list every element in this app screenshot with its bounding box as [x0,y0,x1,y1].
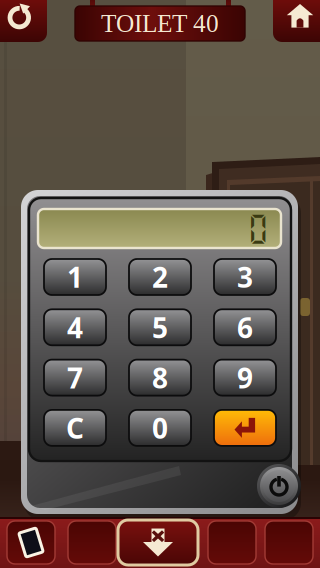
button[interactable]: Inventory slot [208,521,256,564]
button[interactable]: 6 [214,309,276,345]
staticText: 7 [67,359,83,396]
staticText: 8 [152,359,168,396]
staticText: 5 [152,309,168,346]
button[interactable]: 8 [129,360,191,396]
button[interactable]: Close keypad [118,520,198,565]
staticText: 9 [237,359,253,396]
button[interactable]: Home [273,0,320,42]
button[interactable]: 0 [129,410,191,446]
staticText: 0 [247,210,269,246]
button[interactable]: 3 [214,259,276,295]
button[interactable]: 4 [44,309,106,345]
button[interactable]: 2 [129,259,191,295]
button[interactable]: C [44,410,106,446]
staticText: 0 [152,409,168,446]
button[interactable]: 9 [214,360,276,396]
staticText: 1 [67,258,83,296]
staticText: 3 [237,258,253,296]
staticText: 2 [152,258,168,296]
button[interactable]: Enter code [214,410,276,446]
button[interactable]: Inventory slot [265,521,313,564]
button[interactable]: 7 [44,360,106,396]
staticText: TOILET 40 [101,9,219,38]
staticText: 6 [237,309,253,346]
button[interactable]: 1 [44,259,106,295]
staticText: C [66,409,84,446]
button[interactable]: Inventory slot [7,521,55,564]
button[interactable]: Inventory slot [68,521,116,564]
staticText: 4 [67,309,83,346]
button[interactable]: Restart level [0,0,47,42]
button[interactable]: 5 [129,309,191,345]
